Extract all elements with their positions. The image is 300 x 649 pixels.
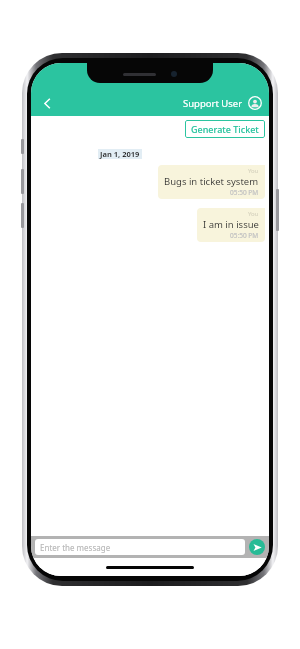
button[interactable]: Send <box>249 539 265 555</box>
button[interactable]: You <box>197 208 265 242</box>
staticText: Jan 1, 2019 <box>100 149 140 159</box>
staticText: Enter the message <box>40 542 111 553</box>
staticText: 05:50 PM <box>230 188 259 197</box>
button[interactable]: Generate Ticket <box>185 120 265 138</box>
staticText: Generate Ticket <box>191 123 259 135</box>
button[interactable]: Profile <box>248 96 262 110</box>
staticText: You <box>248 167 259 175</box>
staticText: Support User <box>183 97 243 110</box>
staticText: Bugs in ticket system <box>164 175 259 188</box>
button[interactable]: Enter the message <box>35 539 245 555</box>
staticText: 05:50 PM <box>230 231 259 240</box>
button[interactable]: Back <box>37 93 57 113</box>
staticText: You <box>248 210 259 218</box>
button[interactable]: You <box>158 165 265 199</box>
staticText: I am in issue <box>203 218 259 231</box>
